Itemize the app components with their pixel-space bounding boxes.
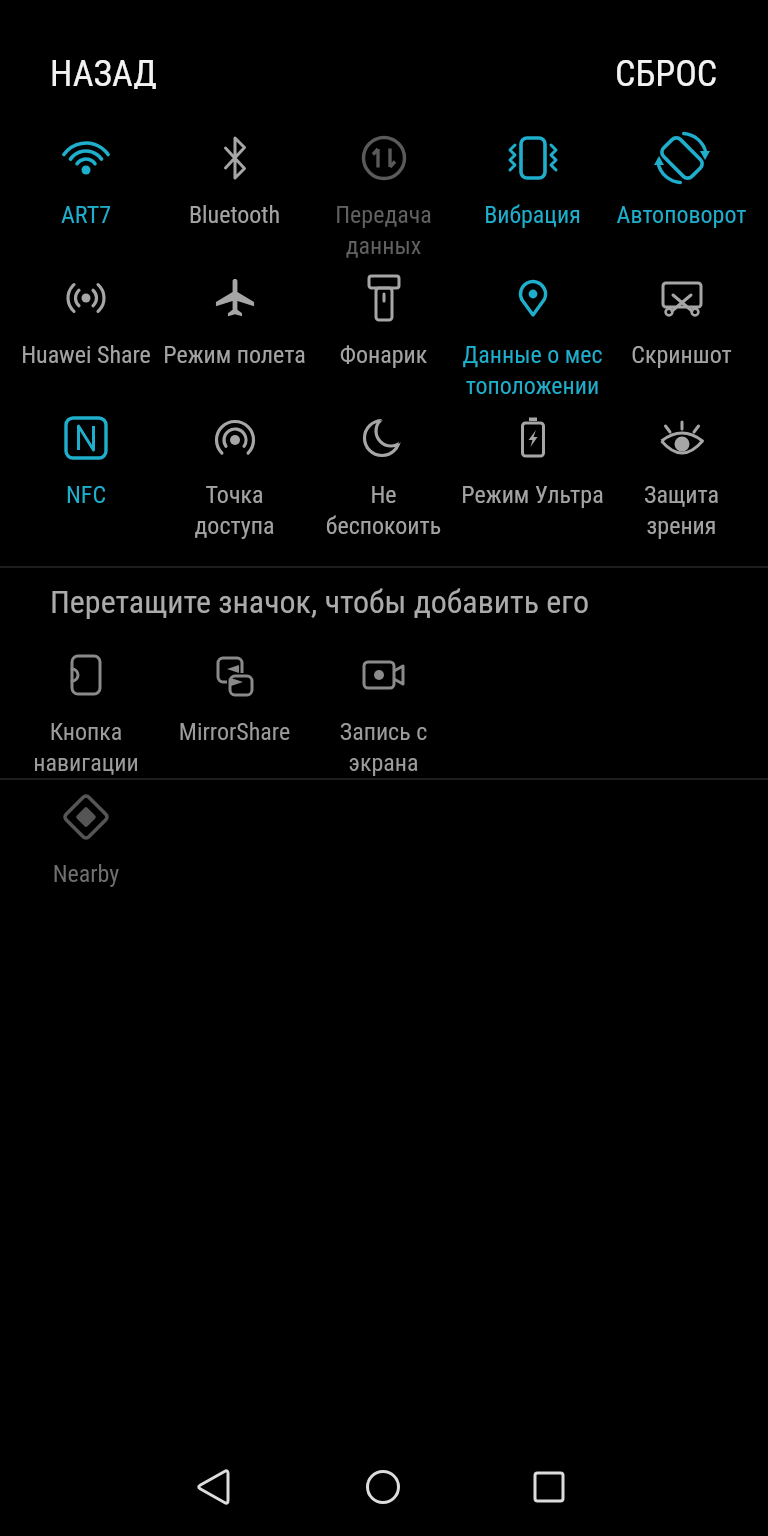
staticText: Защита зрения (607, 481, 756, 540)
button[interactable]: ART7 (12, 130, 160, 270)
button[interactable]: Передача данных (309, 130, 458, 270)
button[interactable] (494, 1438, 604, 1536)
staticText: Nearby (12, 860, 160, 888)
button[interactable]: Защита зрения (607, 410, 756, 550)
staticText: Перетащите значок, чтобы добавить его (50, 583, 589, 621)
staticText: MirrorShare (160, 718, 309, 746)
staticText: Фонарик (309, 341, 458, 369)
button[interactable] (328, 1438, 438, 1536)
button[interactable]: Режим полета (160, 270, 309, 410)
button[interactable]: Точка доступа (160, 410, 309, 550)
button[interactable]: Скриншот (607, 270, 756, 410)
button[interactable]: Данные о мес тоположении (458, 270, 607, 410)
button[interactable]: Автоповорот (607, 130, 756, 270)
staticText: NFC (12, 481, 160, 509)
button[interactable]: NFC (12, 410, 160, 550)
button[interactable]: Huawei Share (12, 270, 160, 410)
staticText: Режим Ультра (458, 481, 607, 509)
button[interactable]: MirrorShare (160, 647, 309, 778)
staticText: Не беспокоить (309, 481, 458, 540)
staticText: Bluetooth (160, 201, 309, 229)
button[interactable]: Не беспокоить (309, 410, 458, 550)
staticText: Точка доступа (160, 481, 309, 540)
staticText: ART7 (12, 201, 160, 229)
staticText: Кнопка навигации (12, 718, 160, 777)
button[interactable]: Режим Ультра (458, 410, 607, 550)
button[interactable]: Фонарик (309, 270, 458, 410)
staticText: Запись с экрана (309, 718, 458, 777)
staticText: Автоповорот (607, 201, 756, 229)
button[interactable]: Bluetooth (160, 130, 309, 270)
button[interactable]: Nearby (12, 789, 160, 919)
button[interactable] (160, 1438, 270, 1536)
staticText: Передача данных (309, 201, 458, 260)
button[interactable]: Кнопка навигации (12, 647, 160, 778)
staticText: Вибрация (458, 201, 607, 229)
staticText: Скриншот (607, 341, 756, 369)
button[interactable]: Вибрация (458, 130, 607, 270)
button[interactable]: Запись с экрана (309, 647, 458, 778)
staticText: Данные о мес тоположении (458, 341, 607, 400)
button[interactable]: НАЗАД (50, 53, 157, 89)
button[interactable]: СБРОС (615, 53, 718, 89)
staticText: Режим полета (160, 341, 309, 369)
staticText: Huawei Share (12, 341, 160, 369)
